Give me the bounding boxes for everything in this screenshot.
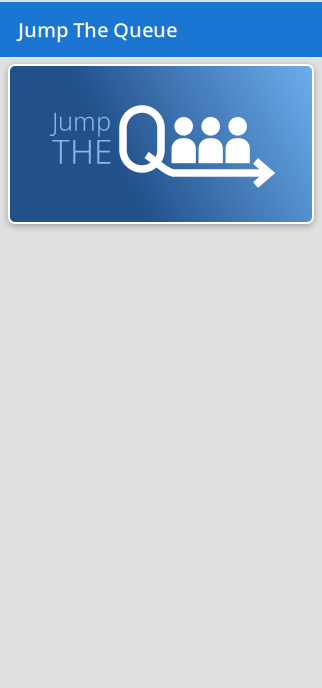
staticText: Jump [52, 104, 111, 138]
staticText: THE [52, 129, 112, 173]
staticText: Jump The Queue [18, 16, 177, 43]
button[interactable]: Jump The Queue [0, 2, 322, 57]
